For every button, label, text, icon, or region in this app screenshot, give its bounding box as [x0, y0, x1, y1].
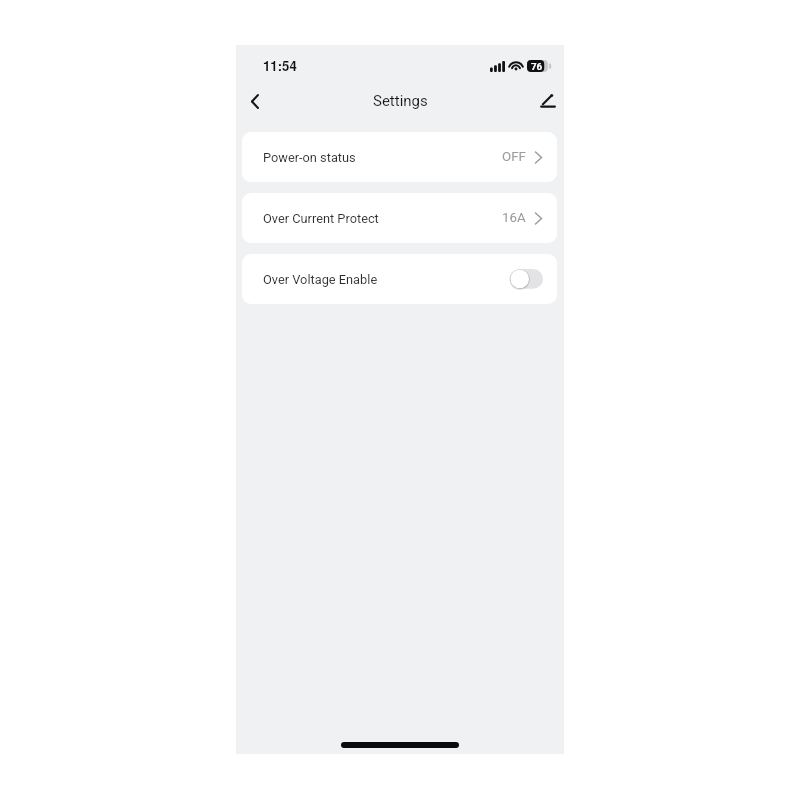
button[interactable]: Back	[239, 85, 271, 117]
button[interactable]: Over Voltage Enable	[242, 254, 557, 304]
button[interactable]: Edit	[532, 85, 564, 117]
staticText: 11:54	[263, 56, 297, 75]
staticText: OFF	[502, 149, 526, 165]
button[interactable]: Over Current Protect	[242, 193, 557, 243]
staticText: 76	[531, 61, 543, 72]
button[interactable]: Power-on status	[242, 132, 557, 182]
staticText: Settings	[373, 92, 428, 110]
staticText: 16A	[502, 210, 526, 226]
button[interactable]: Over Voltage Enable toggle	[510, 269, 543, 290]
staticText: Power-on status	[263, 150, 356, 165]
staticText: Over Voltage Enable	[263, 272, 378, 287]
staticText: Over Current Protect	[263, 211, 379, 226]
